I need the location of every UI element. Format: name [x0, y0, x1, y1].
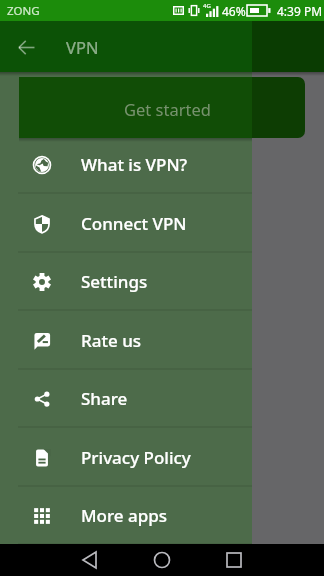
staticText: ZONG [7, 3, 40, 19]
button[interactable]: Privacy Policy [0, 428, 252, 487]
button[interactable]: Connect VPN [0, 194, 252, 253]
button[interactable]: Rate us [0, 311, 252, 370]
button[interactable]: Back [13, 34, 39, 60]
staticText: Privacy Policy [81, 446, 191, 469]
staticText: More apps [81, 504, 168, 527]
staticText: 46% [222, 3, 246, 19]
button[interactable]: Share [0, 369, 252, 428]
staticText: VPN [66, 36, 99, 58]
button[interactable] [19, 77, 305, 138]
staticText: 4:39 PM [277, 3, 323, 19]
staticText: What is VPN? [81, 153, 188, 176]
button[interactable]: Home [143, 544, 181, 576]
staticText: Share [81, 387, 128, 410]
button[interactable]: Recent apps [234, 544, 272, 576]
button[interactable]: Settings [0, 252, 252, 311]
button[interactable]: More apps [0, 486, 252, 545]
button[interactable]: Back [53, 544, 91, 576]
staticText: 4G [203, 2, 211, 10]
staticText: Settings [81, 270, 148, 293]
staticText: Get started [124, 98, 211, 120]
staticText: Connect VPN [81, 212, 187, 235]
button[interactable]: Get started [19, 77, 252, 138]
staticText: Rate us [81, 329, 142, 352]
button[interactable]: What is VPN? [0, 135, 252, 194]
